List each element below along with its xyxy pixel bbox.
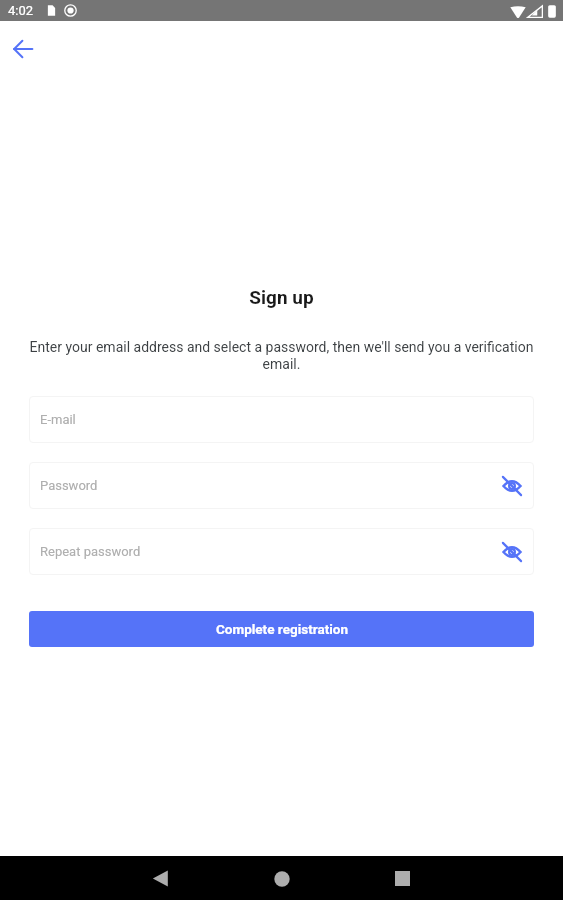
button[interactable]: Show password (497, 537, 527, 567)
button[interactable]: E-mail (29, 396, 534, 443)
staticText: 4:02 (8, 3, 34, 18)
button[interactable]: Recent apps (384, 860, 421, 897)
staticText: Sign up (0, 286, 563, 308)
button[interactable]: Repeat password (29, 528, 534, 575)
button[interactable]: Back (0, 26, 45, 71)
button[interactable]: Back (142, 860, 179, 897)
staticText: Enter your email address and select a pa… (29, 339, 534, 373)
staticText: Password (40, 478, 98, 493)
staticText: E-mail (40, 412, 76, 427)
button[interactable]: Password (29, 462, 534, 509)
staticText: Complete registration (216, 621, 348, 637)
staticText: Repeat password (40, 544, 141, 559)
button[interactable]: Show password (497, 471, 527, 501)
button[interactable]: Complete registration (29, 611, 534, 647)
button[interactable]: Home (263, 860, 300, 897)
